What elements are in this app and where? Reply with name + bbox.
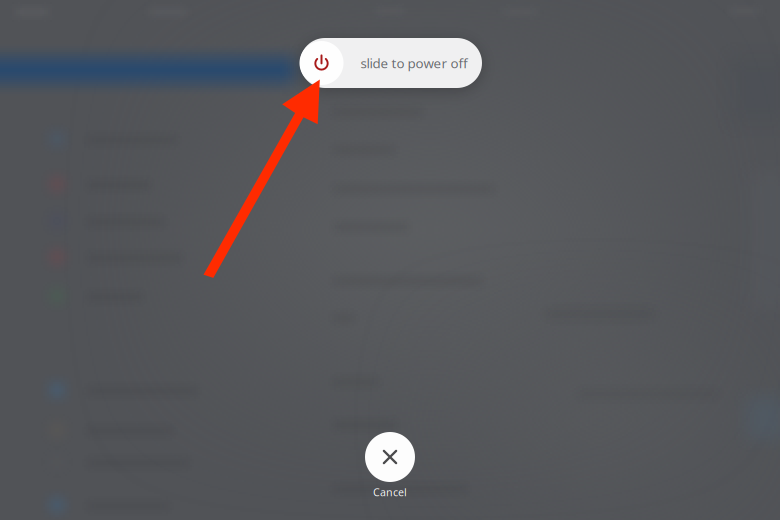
staticText: slide to power off <box>360 54 467 72</box>
button[interactable]: Cancel <box>345 432 435 499</box>
button[interactable]: slide to power off <box>300 38 482 88</box>
staticText: Cancel <box>373 485 407 499</box>
